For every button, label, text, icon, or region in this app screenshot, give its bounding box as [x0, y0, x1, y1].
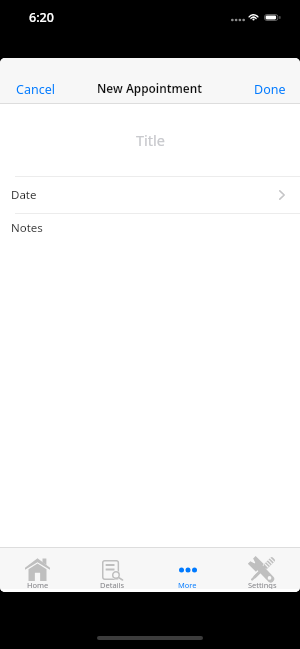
staticText: Date: [11, 187, 37, 203]
staticText: New Appointment: [97, 80, 203, 96]
staticText: More: [178, 580, 197, 590]
staticText: Settings: [248, 580, 277, 590]
button[interactable]: Done: [240, 77, 300, 104]
staticText: Done: [254, 81, 286, 98]
button[interactable]: Settings: [225, 548, 300, 592]
button[interactable]: Title: [0, 104, 300, 176]
staticText: Notes: [11, 220, 43, 236]
button[interactable]: More: [150, 548, 225, 592]
staticText: Cancel: [16, 81, 55, 98]
staticText: Home: [27, 580, 49, 590]
button[interactable]: Notes: [0, 214, 300, 241]
button[interactable]: Home: [0, 548, 75, 592]
staticText: Title: [136, 130, 165, 150]
button[interactable]: Cancel: [0, 77, 69, 104]
button[interactable]: Details: [75, 548, 150, 592]
staticText: 6:20: [29, 9, 54, 26]
staticText: Details: [100, 580, 125, 590]
button[interactable]: Date: [0, 177, 300, 213]
